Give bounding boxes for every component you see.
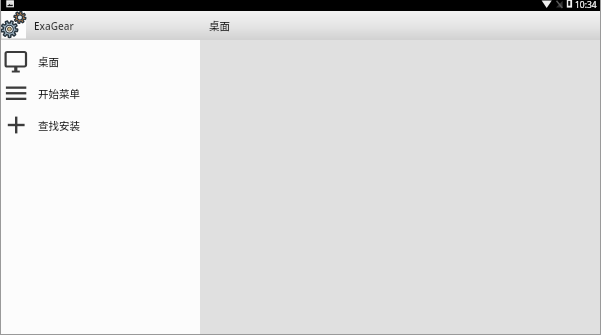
button[interactable]: 桌面 bbox=[200, 11, 601, 40]
staticText: 桌面 bbox=[38, 54, 59, 69]
staticText: 查找安装 bbox=[38, 118, 80, 133]
staticText: 10:34 bbox=[575, 0, 597, 10]
staticText: 开始菜单 bbox=[38, 86, 80, 101]
button[interactable]: 开始菜单 bbox=[0, 77, 200, 109]
button[interactable]: ExaGear bbox=[0, 11, 200, 40]
button[interactable]: 桌面 bbox=[0, 45, 200, 77]
staticText: 桌面 bbox=[209, 18, 230, 33]
button[interactable]: 查找安装 bbox=[0, 109, 200, 141]
staticText: ExaGear bbox=[34, 19, 74, 33]
